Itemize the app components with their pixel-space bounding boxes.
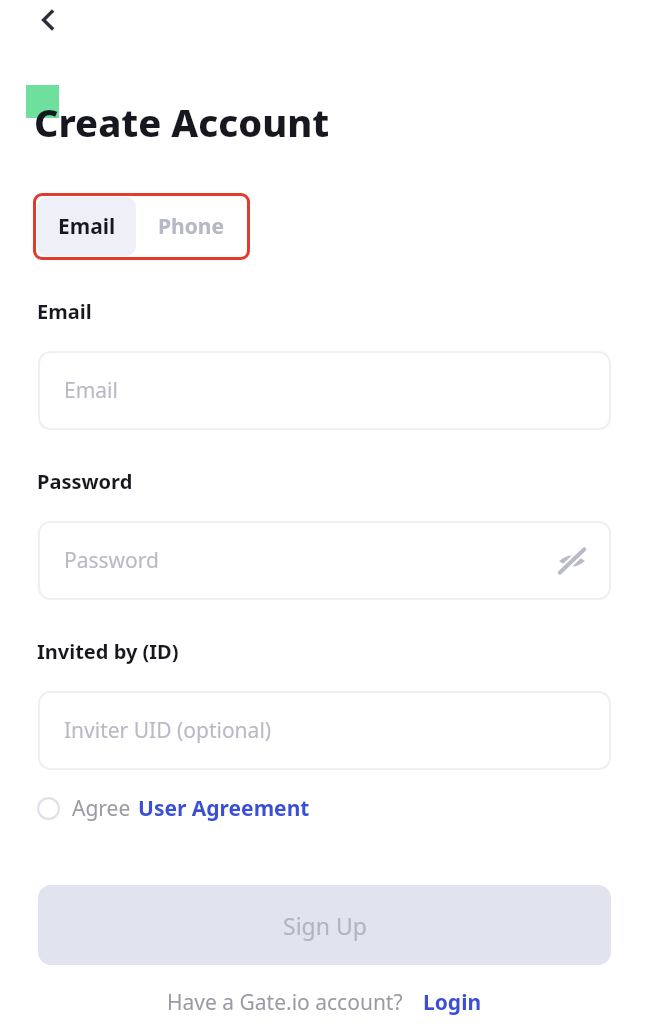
button[interactable]: Email (38, 351, 611, 430)
button[interactable]: Login (423, 988, 482, 1017)
staticText: Have a Gate.io account? (167, 988, 403, 1017)
button[interactable]: Inviter UID (optional) (38, 691, 611, 770)
staticText: Agree (72, 794, 131, 823)
button[interactable]: Sign Up (38, 885, 611, 965)
button[interactable]: Back (25, 0, 71, 43)
staticText: Create Account (34, 96, 330, 148)
button[interactable]: Password (38, 521, 611, 600)
staticText: Email (58, 212, 116, 241)
button[interactable]: Email (37, 197, 136, 256)
staticText: Password (37, 468, 133, 495)
button[interactable]: Show password (557, 546, 587, 576)
staticText: Inviter UID (optional) (64, 716, 272, 745)
staticText: Sign Up (283, 910, 367, 941)
staticText: User Agreement (138, 794, 310, 823)
staticText: Email (64, 376, 118, 405)
button[interactable]: Agree (37, 788, 310, 828)
staticText: Invited by (ID) (37, 638, 179, 665)
staticText: Login (423, 988, 482, 1017)
staticText: Password (64, 546, 159, 575)
staticText: Phone (158, 212, 225, 241)
staticText: Email (37, 298, 92, 325)
button[interactable]: Phone (136, 197, 246, 256)
